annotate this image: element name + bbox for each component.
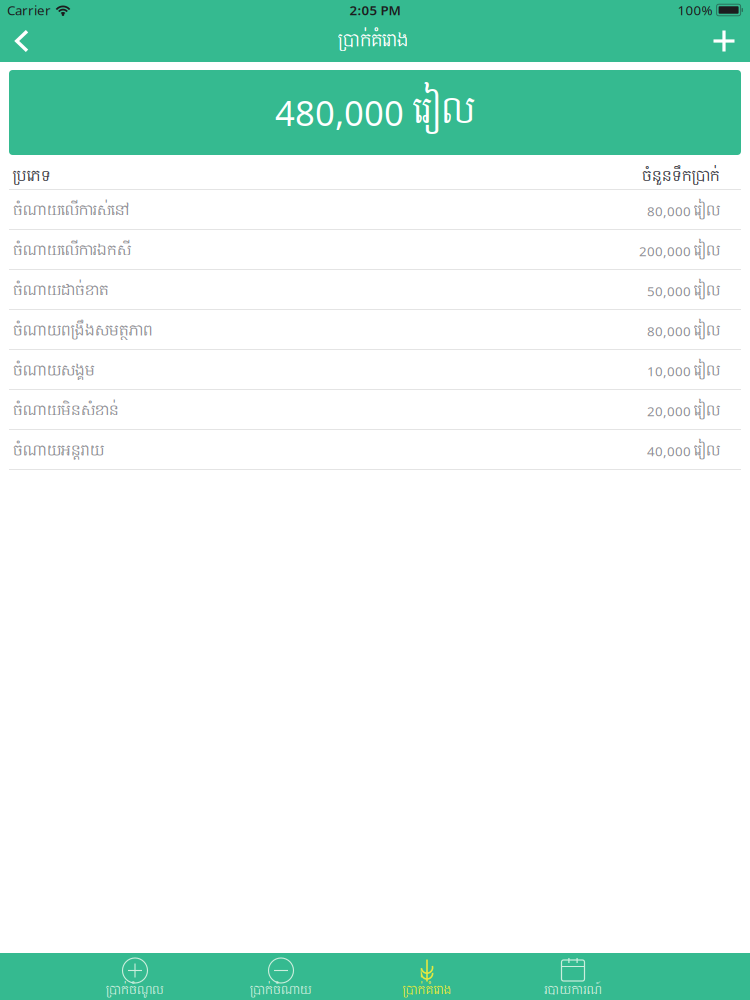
staticText: 200,000 [639, 242, 694, 260]
staticText: ចំណាយមិនសំខាន់ [13, 398, 119, 424]
staticText: ចំណាយដាច់ខាត [13, 278, 109, 304]
staticText: ប្រភេទ [13, 164, 51, 189]
staticText: រៀល [694, 198, 720, 224]
button[interactable]: Add [702, 20, 746, 62]
button[interactable]: Back [0, 20, 44, 62]
staticText: រៀល [413, 82, 475, 143]
staticText: ប្រាក់ចំណូល [106, 980, 164, 1000]
staticText: ចំណាយអន្តរាយ [13, 438, 104, 464]
staticText: រៀល [694, 318, 720, 344]
staticText: រៀល [694, 398, 720, 424]
button[interactable]: របាយការណ៍ [500, 953, 646, 1000]
staticText: 100% [678, 1, 713, 19]
staticText: 2:05 PM [349, 1, 400, 19]
button[interactable]: ប្រាក់គំរោង [354, 953, 500, 1000]
staticText: ចំណាយលើការឯកសី [13, 238, 131, 264]
staticText: រៀល [694, 358, 720, 384]
button[interactable]: ប្រាក់ចំណូល [62, 953, 208, 1000]
staticText: 80,000 [647, 202, 694, 220]
button[interactable]: ប្រាក់ចំណាយ [208, 953, 354, 1000]
staticText: រៀល [694, 278, 720, 304]
staticText: រៀល [694, 438, 720, 464]
staticText: រៀល [694, 238, 720, 264]
staticText: Carrier [7, 1, 51, 19]
staticText: ចំណាយលើការស់នៅ [13, 198, 129, 224]
staticText: 50,000 [647, 282, 694, 300]
staticText: ប្រាក់គំរោង [338, 26, 408, 56]
staticText: ចំនួនទឹកប្រាក់ [642, 164, 720, 189]
staticText: 20,000 [647, 402, 694, 420]
staticText: ប្រាក់គំរោង [402, 980, 451, 1000]
staticText: ប្រាក់ចំណាយ [250, 980, 312, 1000]
staticText: 10,000 [647, 362, 694, 380]
staticText: ចំណាយសង្គម [13, 358, 95, 384]
staticText: 480,000 [275, 89, 404, 135]
staticText: 80,000 [647, 322, 694, 340]
staticText: របាយការណ៍ [544, 980, 601, 1000]
staticText: 40,000 [647, 442, 694, 460]
staticText: ចំណាយពង្រឹងសមត្ថភាព [13, 318, 153, 344]
